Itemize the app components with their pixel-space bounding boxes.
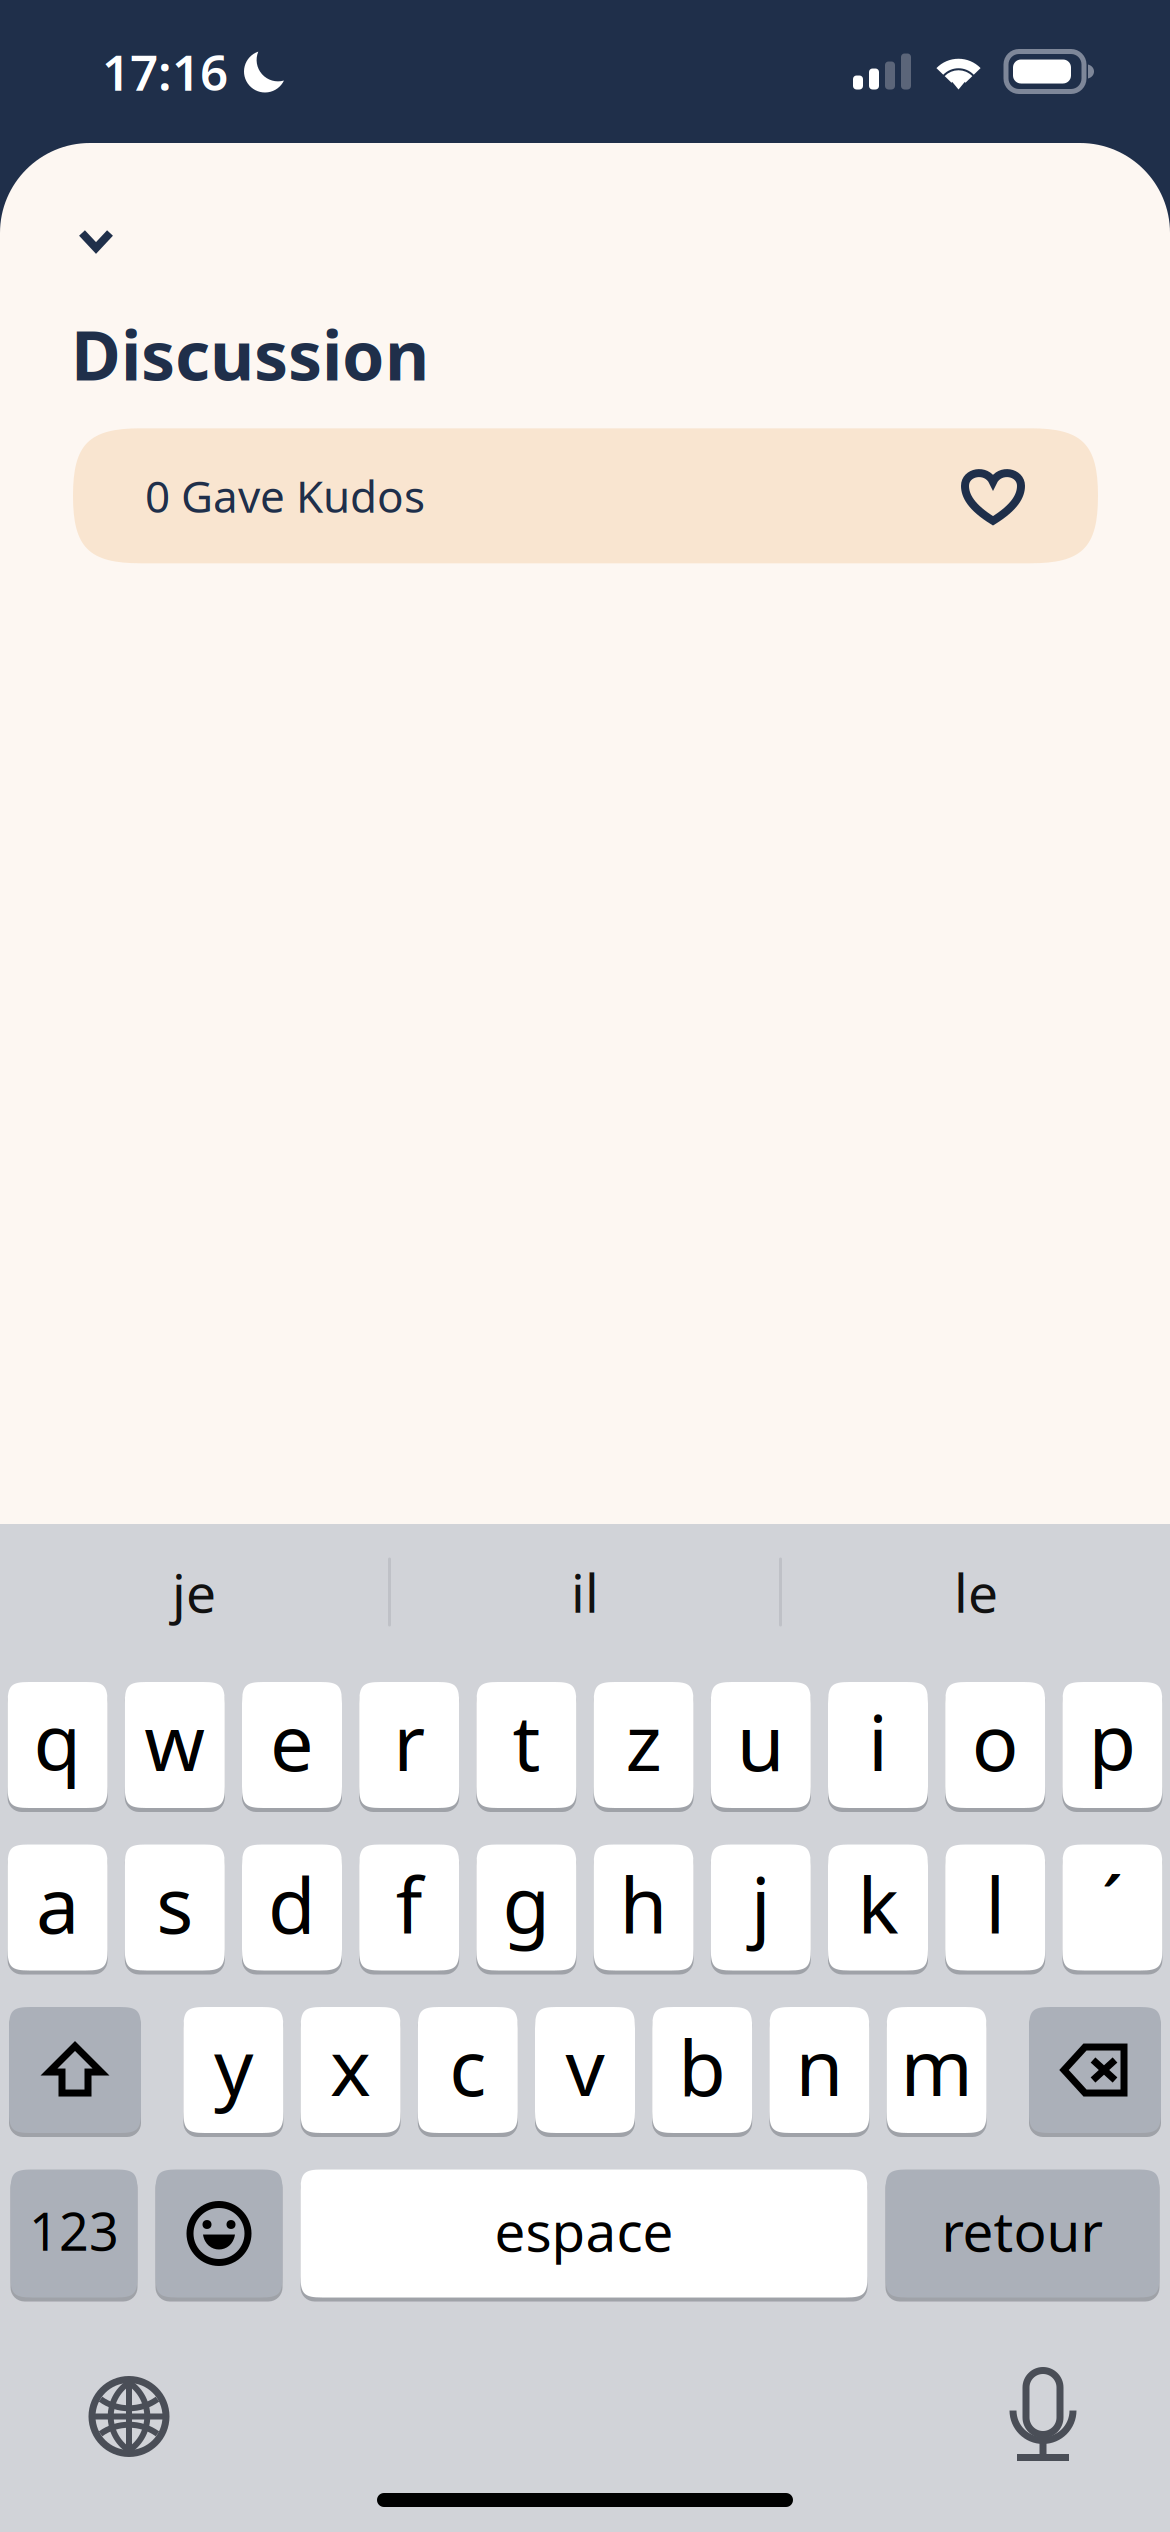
button[interactable]: i: [828, 1682, 928, 1812]
staticText: d: [268, 1852, 316, 1955]
staticText: 123: [29, 2196, 119, 2265]
staticText: 0 Gave Kudos: [145, 467, 425, 525]
button[interactable]: il: [391, 1524, 779, 1660]
button[interactable]: Collapse: [0, 143, 154, 286]
button[interactable]: z: [594, 1682, 694, 1812]
button[interactable]: p: [1062, 1682, 1162, 1812]
staticText: g: [502, 1852, 550, 1955]
button[interactable]: ´: [1062, 1844, 1162, 1974]
staticText: k: [857, 1852, 898, 1955]
button[interactable]: d: [242, 1844, 342, 1974]
staticText: c: [449, 2015, 486, 2117]
button[interactable]: je: [0, 1524, 388, 1660]
button[interactable]: Dictation: [1008, 2370, 1078, 2462]
staticText: retour: [941, 2194, 1103, 2267]
button[interactable]: h: [594, 1844, 694, 1974]
staticText: e: [270, 1690, 314, 1792]
button[interactable]: x: [301, 2007, 401, 2137]
button[interactable]: espace: [300, 2169, 867, 2301]
staticText: h: [620, 1852, 668, 1955]
button[interactable]: u: [711, 1682, 811, 1812]
staticText: r: [393, 1690, 425, 1792]
button[interactable]: Shift: [9, 2007, 141, 2137]
staticText: w: [144, 1690, 205, 1792]
button[interactable]: v: [535, 2007, 635, 2137]
staticText: j: [751, 1852, 771, 1955]
staticText: p: [1088, 1690, 1136, 1792]
staticText: espace: [494, 2194, 673, 2267]
button[interactable]: n: [769, 2007, 869, 2137]
staticText: il: [571, 1557, 599, 1627]
button[interactable]: 123: [10, 2169, 137, 2301]
button[interactable]: m: [887, 2007, 987, 2137]
staticText: z: [626, 1690, 662, 1792]
staticText: n: [795, 2015, 843, 2117]
button[interactable]: f: [359, 1844, 459, 1974]
staticText: v: [565, 2015, 604, 2117]
staticText: 17:16: [102, 39, 228, 104]
staticText: f: [396, 1852, 423, 1955]
staticText: u: [737, 1690, 785, 1792]
button[interactable]: e: [242, 1682, 342, 1812]
button[interactable]: w: [125, 1682, 225, 1812]
button[interactable]: s: [125, 1844, 225, 1974]
staticText: Discussion: [71, 309, 429, 399]
staticText: le: [954, 1557, 998, 1627]
staticText: m: [901, 2015, 973, 2117]
button[interactable]: Delete: [1029, 2007, 1161, 2137]
staticText: a: [36, 1852, 79, 1955]
staticText: x: [330, 2015, 371, 2117]
button[interactable]: g: [476, 1844, 576, 1974]
staticText: t: [512, 1690, 540, 1792]
staticText: l: [985, 1852, 1005, 1955]
staticText: i: [868, 1690, 888, 1792]
staticText: ´: [1101, 1852, 1123, 1955]
staticText: je: [172, 1557, 216, 1627]
button[interactable]: k: [828, 1844, 928, 1974]
staticText: o: [972, 1690, 1019, 1792]
button[interactable]: y: [183, 2007, 283, 2137]
button[interactable]: t: [476, 1682, 576, 1812]
button[interactable]: a: [8, 1844, 108, 1974]
staticText: y: [214, 2015, 253, 2117]
button[interactable]: o: [945, 1682, 1045, 1812]
button[interactable]: r: [359, 1682, 459, 1812]
button[interactable]: Emoji: [155, 2169, 282, 2301]
staticText: q: [34, 1690, 82, 1792]
staticText: b: [678, 2015, 726, 2117]
button[interactable]: q: [8, 1682, 108, 1812]
staticText: s: [156, 1852, 193, 1955]
button[interactable]: retour: [885, 2169, 1159, 2301]
button[interactable]: b: [652, 2007, 752, 2137]
button[interactable]: j: [711, 1844, 811, 1974]
button[interactable]: c: [418, 2007, 518, 2137]
button[interactable]: 0 Gave Kudos: [73, 428, 1098, 563]
button[interactable]: Next keyboard: [92, 2379, 166, 2453]
button[interactable]: l: [945, 1844, 1045, 1974]
button[interactable]: le: [782, 1524, 1170, 1660]
